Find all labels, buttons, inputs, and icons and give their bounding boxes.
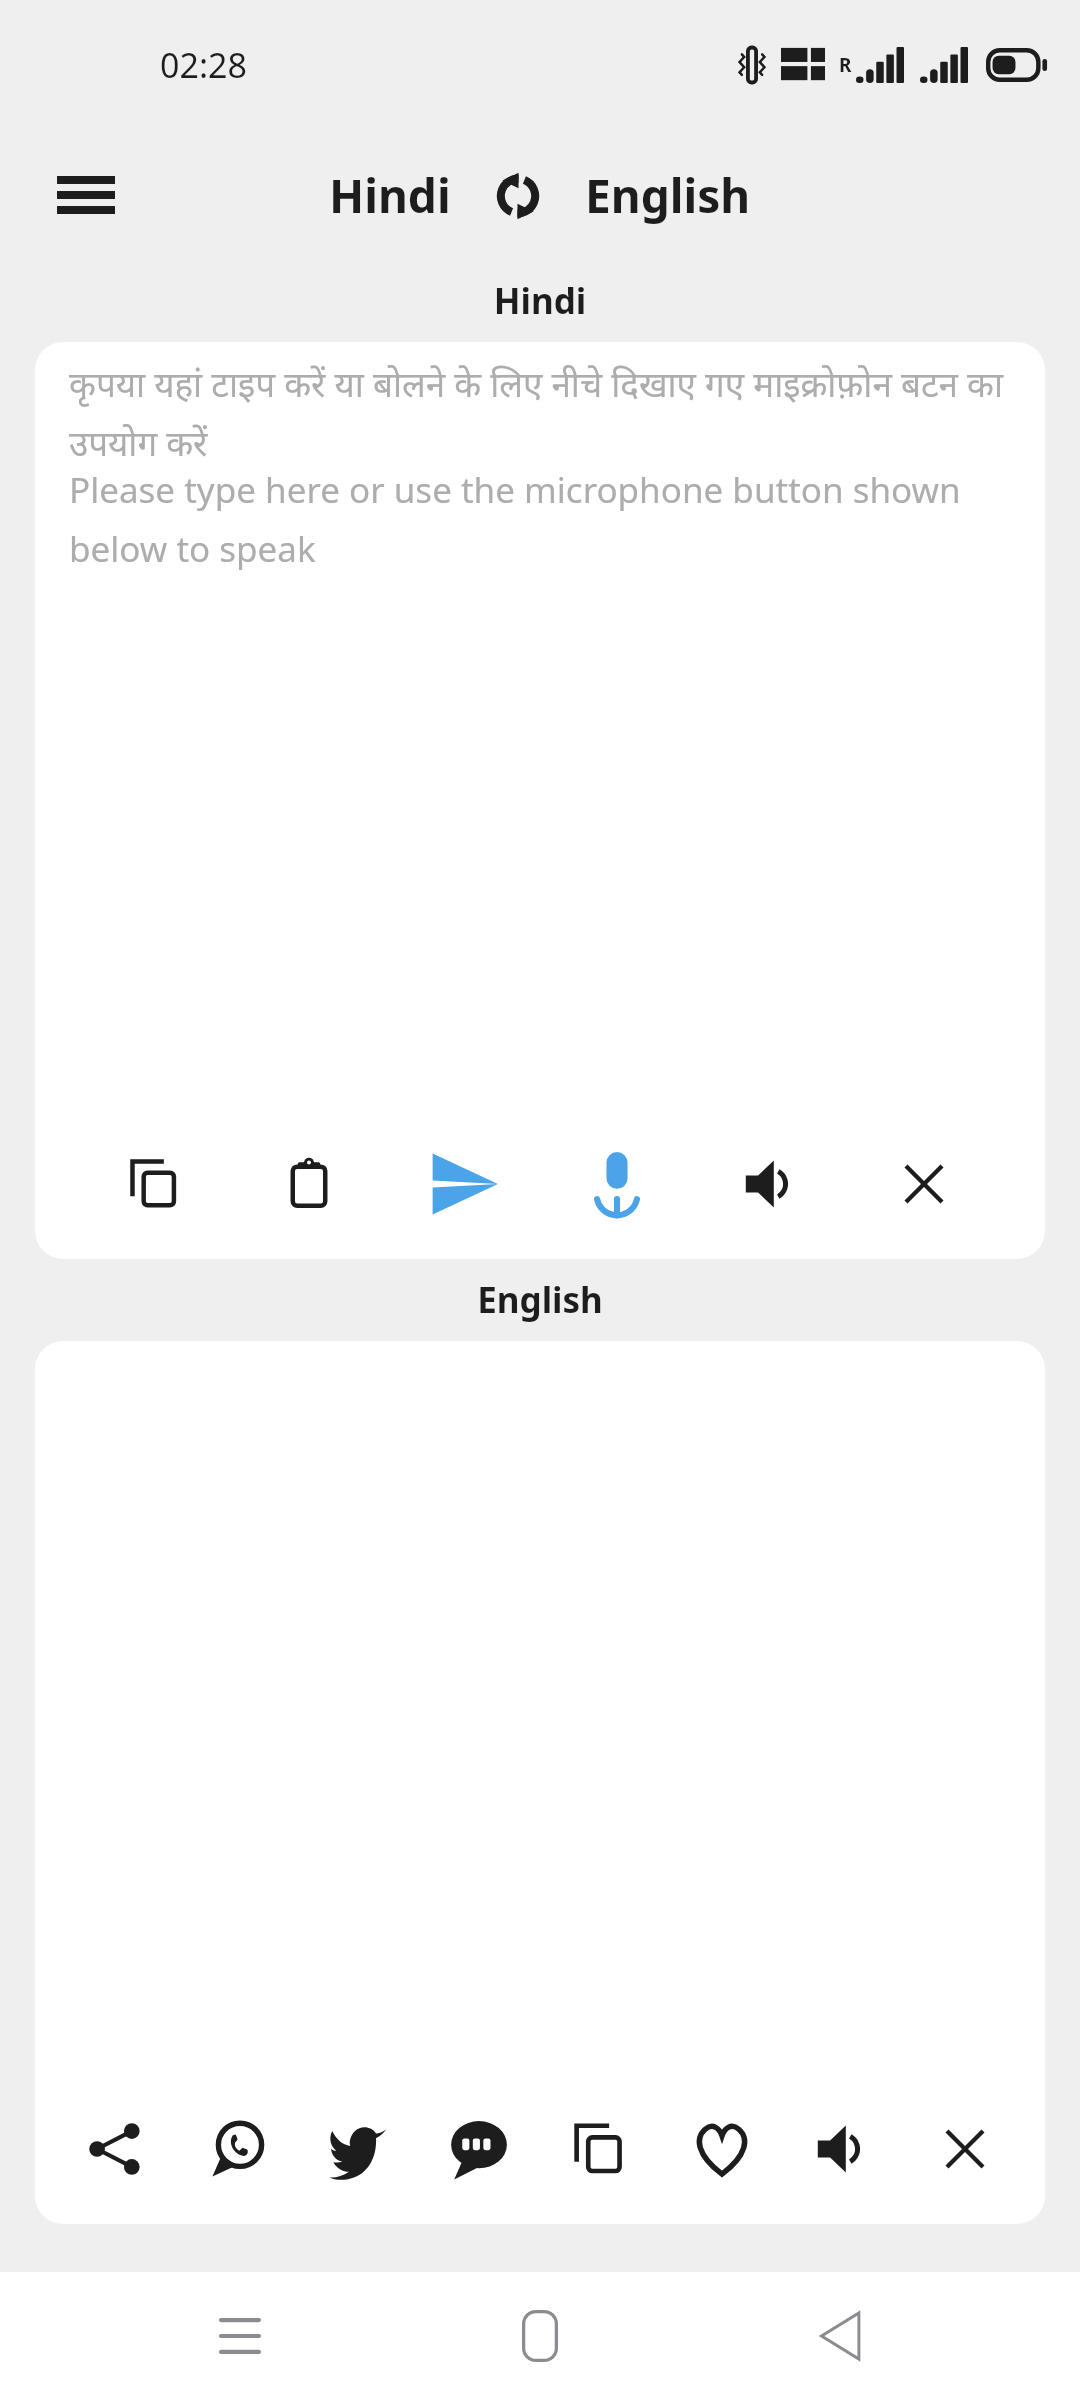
button[interactable]: Paste	[254, 1119, 364, 1249]
button[interactable]: Listen	[716, 1119, 826, 1249]
button[interactable]: Speak	[562, 1119, 672, 1249]
button[interactable]: Clear	[910, 2084, 1020, 2214]
button[interactable]: SMS	[424, 2084, 534, 2214]
button[interactable]: Twitter	[303, 2084, 413, 2214]
button[interactable]: Favourite	[667, 2084, 777, 2214]
staticText: Hindi	[0, 277, 1080, 325]
button[interactable]: कृपया यहां टाइप करें या बोलने के लिए नीच…	[69, 360, 1017, 1109]
button[interactable]: Back	[780, 2276, 900, 2396]
button[interactable]: English	[577, 156, 759, 235]
staticText: कृपया यहां टाइप करें या बोलने के लिए नीच…	[69, 360, 1017, 466]
button[interactable]: Copy	[101, 1119, 211, 1249]
button[interactable]: WhatsApp	[182, 2084, 292, 2214]
button[interactable]: Hindi	[321, 156, 459, 235]
button[interactable]: Listen	[788, 2084, 898, 2214]
staticText: Please type here or use the microphone b…	[69, 466, 1017, 572]
staticText: English	[585, 164, 751, 227]
button[interactable]: Share	[60, 2084, 170, 2214]
button[interactable]: Open menu	[38, 147, 134, 243]
staticText: 02:28	[160, 42, 247, 88]
button[interactable]: Home	[480, 2276, 600, 2396]
button[interactable]: Recents	[180, 2276, 300, 2396]
staticText: Hindi	[329, 164, 451, 227]
button[interactable]: Swap languages	[483, 161, 553, 231]
button[interactable]: Clear	[869, 1119, 979, 1249]
button[interactable]: Copy	[546, 2084, 656, 2214]
staticText: English	[0, 1276, 1080, 1324]
staticText: R	[839, 52, 852, 78]
button[interactable]: Translate	[408, 1119, 518, 1249]
